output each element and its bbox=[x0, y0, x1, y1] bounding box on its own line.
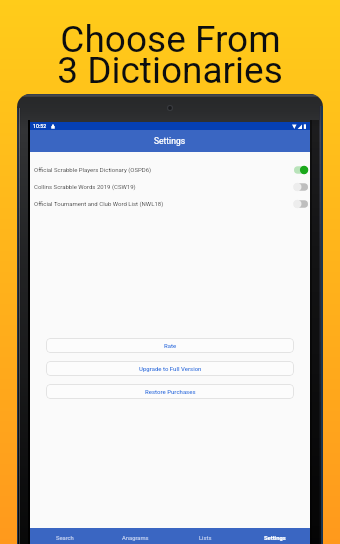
staticText: 3 Dictionaries bbox=[57, 49, 283, 92]
staticText: Anagrams bbox=[122, 535, 149, 542]
button[interactable]: Collins Scrabble Words 2019 (CSW19) bbox=[30, 178, 310, 195]
staticText: Search bbox=[56, 535, 74, 542]
staticText: Choose From bbox=[60, 18, 281, 61]
button[interactable]: Official Scrabble Players Dictionary (OS… bbox=[30, 161, 310, 178]
button[interactable]: Restore Purchases bbox=[46, 384, 294, 399]
staticText: Collins Scrabble Words 2019 (CSW19) bbox=[34, 183, 136, 190]
staticText: Official Tournament and Club Word List (… bbox=[34, 200, 164, 207]
staticText: Settings bbox=[264, 535, 286, 542]
staticText: Official Scrabble Players Dictionary (OS… bbox=[34, 166, 152, 173]
staticText: Rate bbox=[164, 342, 177, 349]
button[interactable]: Rate bbox=[46, 338, 294, 353]
button[interactable]: Lists bbox=[170, 528, 240, 544]
button[interactable]: Anagrams bbox=[100, 528, 170, 544]
staticText: Restore Purchases bbox=[145, 388, 196, 395]
staticText: 10:52 bbox=[33, 123, 47, 129]
button[interactable]: Official Tournament and Club Word List (… bbox=[30, 195, 310, 212]
staticText: Upgrade to Full Version bbox=[139, 365, 202, 372]
button[interactable]: Search bbox=[30, 528, 100, 544]
staticText: Lists bbox=[199, 535, 212, 542]
button[interactable]: Settings bbox=[240, 528, 310, 544]
staticText: Settings bbox=[154, 136, 186, 146]
button[interactable]: Upgrade to Full Version bbox=[46, 361, 294, 376]
